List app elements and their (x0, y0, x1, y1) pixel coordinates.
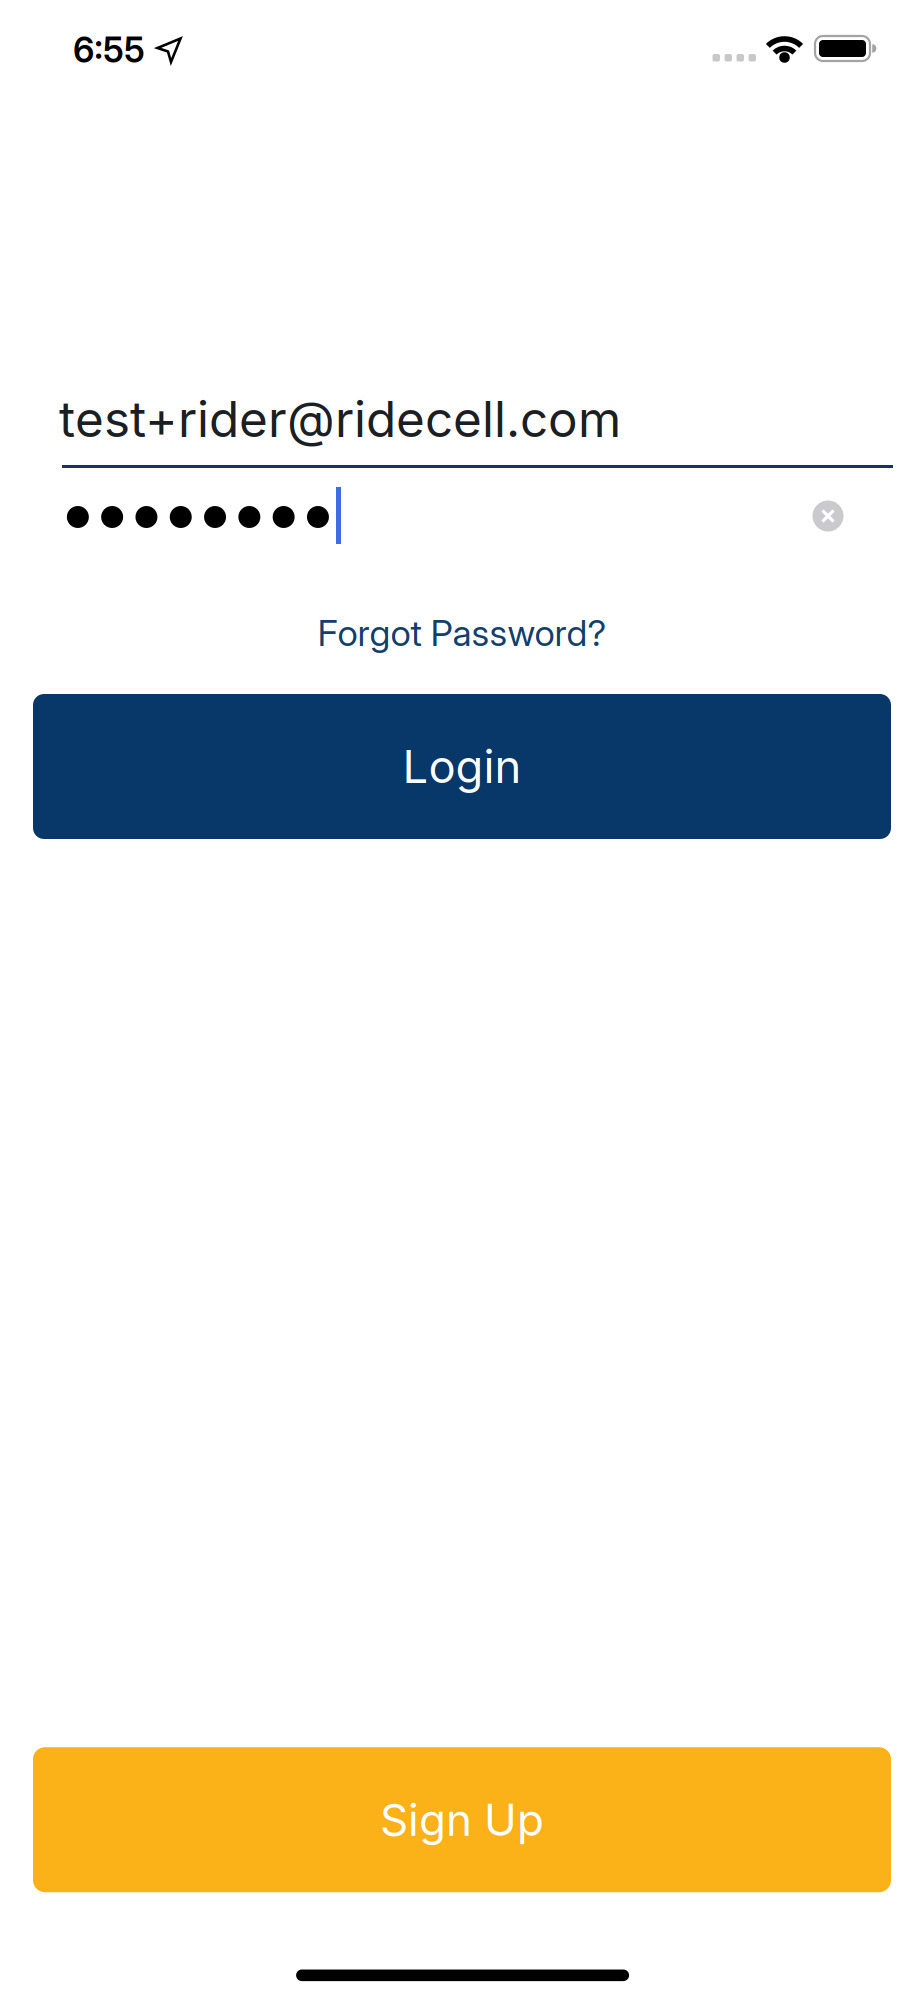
staticText: Sign Up (380, 1793, 544, 1846)
button[interactable]: Forgot Password? (317, 611, 606, 655)
button[interactable]: Clear text (812, 500, 843, 531)
staticText: Login (402, 739, 521, 794)
button[interactable]: Login (33, 694, 891, 839)
staticText: 6:55 (73, 29, 145, 71)
staticText: test+rider@ridecell.com (59, 389, 621, 449)
button[interactable]: Sign Up (33, 1747, 891, 1892)
staticText: Forgot Password? (317, 611, 606, 655)
